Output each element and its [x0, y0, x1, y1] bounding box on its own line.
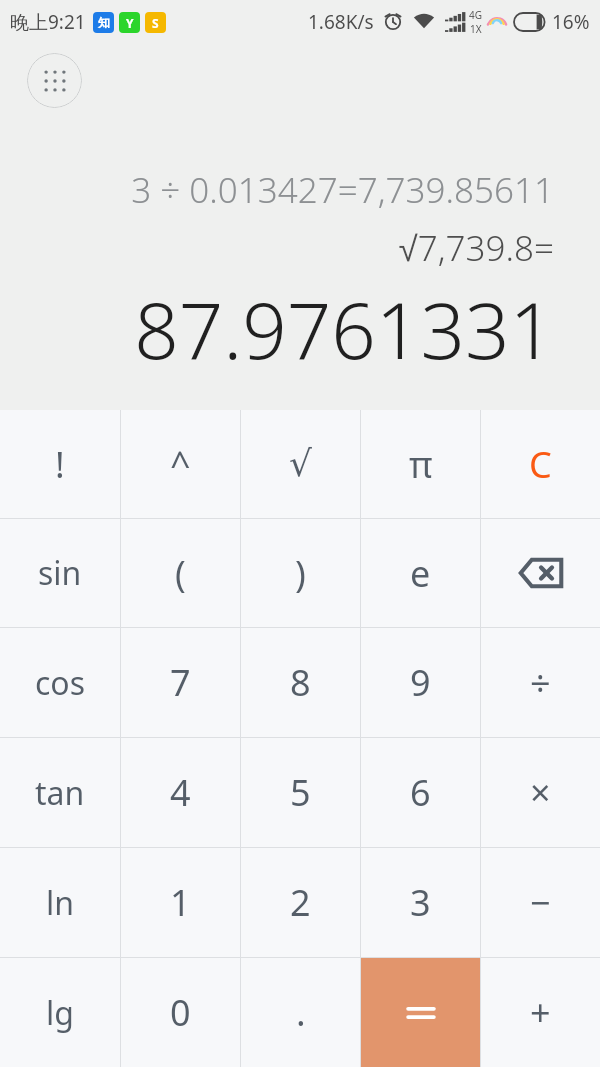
button[interactable]: 2: [241, 848, 360, 957]
button[interactable]: 9: [361, 628, 480, 737]
button[interactable]: 5: [241, 738, 360, 847]
staticText: 5: [290, 768, 311, 817]
button[interactable]: .: [241, 958, 360, 1067]
staticText: 4: [170, 768, 191, 817]
button[interactable]: 3: [361, 848, 480, 957]
staticText: 87.9761331: [134, 276, 554, 382]
button[interactable]: !: [0, 410, 120, 518]
button[interactable]: √: [241, 410, 360, 518]
staticText: 3: [410, 878, 431, 927]
button[interactable]: Backspace: [481, 519, 600, 627]
staticText: +: [530, 988, 551, 1037]
staticText: 晚上9:21: [10, 9, 86, 35]
button[interactable]: ): [241, 519, 360, 627]
staticText: ^: [170, 440, 191, 489]
button[interactable]: Apps grid: [27, 53, 82, 108]
button[interactable]: [361, 958, 480, 1067]
button[interactable]: e: [361, 519, 480, 627]
staticText: !: [55, 440, 65, 489]
staticText: ln: [46, 881, 75, 925]
staticText: 1X: [470, 22, 482, 36]
staticText: .: [296, 988, 306, 1037]
staticText: ×: [530, 768, 551, 817]
staticText: (: [175, 549, 186, 598]
staticText: 知: [98, 15, 110, 30]
button[interactable]: 4: [121, 738, 240, 847]
button[interactable]: 0: [121, 958, 240, 1067]
staticText: 2: [290, 878, 311, 927]
staticText: tan: [35, 771, 85, 815]
button[interactable]: 6: [361, 738, 480, 847]
button[interactable]: 7: [121, 628, 240, 737]
staticText: ): [295, 549, 306, 598]
staticText: 4G: [469, 8, 482, 22]
button[interactable]: ^: [121, 410, 240, 518]
staticText: √7,739.8=: [398, 224, 554, 272]
staticText: cos: [35, 661, 86, 705]
staticText: 7: [170, 658, 191, 707]
staticText: √: [289, 443, 312, 485]
button[interactable]: ln: [0, 848, 120, 957]
button[interactable]: +: [481, 958, 600, 1067]
staticText: ÷: [530, 658, 551, 707]
button[interactable]: sin: [0, 519, 120, 627]
button[interactable]: 1: [121, 848, 240, 957]
staticText: 1.68K/s: [308, 9, 374, 35]
staticText: e: [410, 549, 431, 598]
staticText: 6: [410, 768, 431, 817]
staticText: Y: [126, 15, 134, 31]
staticText: 3 ÷ 0.013427=7,739.85611: [131, 166, 554, 214]
staticText: 9: [410, 658, 431, 707]
button[interactable]: tan: [0, 738, 120, 847]
staticText: π: [409, 440, 433, 489]
staticText: C: [529, 440, 552, 489]
button[interactable]: 8: [241, 628, 360, 737]
staticText: S: [152, 15, 159, 31]
button[interactable]: ÷: [481, 628, 600, 737]
button[interactable]: ×: [481, 738, 600, 847]
button[interactable]: (: [121, 519, 240, 627]
staticText: 1: [170, 878, 191, 927]
button[interactable]: lg: [0, 958, 120, 1067]
staticText: lg: [46, 991, 74, 1035]
button[interactable]: cos: [0, 628, 120, 737]
button[interactable]: C: [481, 410, 600, 518]
staticText: 16%: [552, 9, 590, 35]
staticText: 8: [290, 658, 311, 707]
staticText: sin: [38, 551, 82, 595]
button[interactable]: −: [481, 848, 600, 957]
button[interactable]: π: [361, 410, 480, 518]
staticText: −: [530, 878, 551, 927]
staticText: 0: [170, 988, 191, 1037]
